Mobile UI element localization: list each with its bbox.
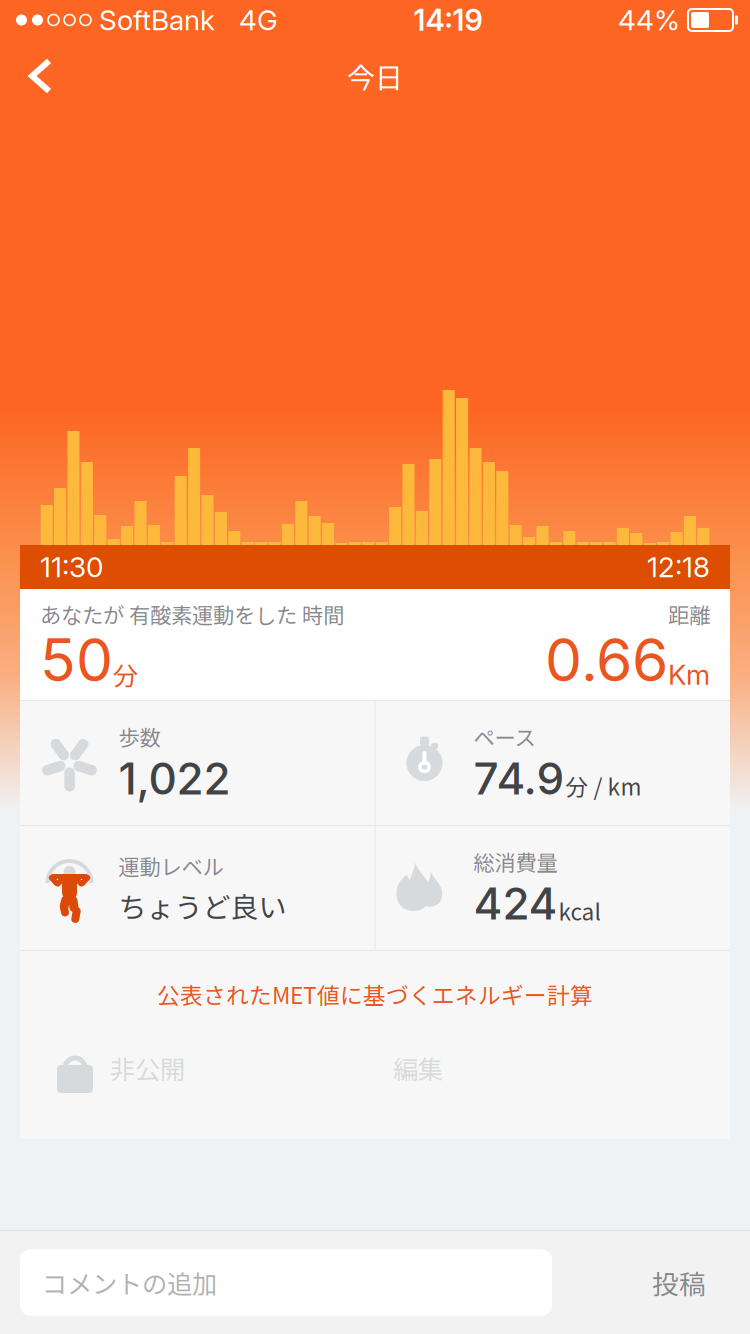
- staticText: SoftBank 4G: [91, 3, 278, 37]
- button[interactable]: Back: [0, 49, 53, 103]
- staticText: 12:18: [647, 550, 710, 584]
- staticText: 0.66: [545, 624, 668, 695]
- staticText: 公表されたMET値に基づくエネルギー計算: [157, 978, 593, 1010]
- staticText: kcal: [558, 894, 600, 927]
- staticText: 14:19: [413, 2, 482, 38]
- staticText: コメントの追加: [42, 1264, 217, 1301]
- staticText: 11:30: [40, 550, 103, 584]
- button[interactable]: 非公開: [20, 1037, 185, 1099]
- staticText: 74.9: [473, 752, 564, 805]
- staticText: 歩数: [118, 721, 160, 752]
- staticText: 424: [473, 877, 557, 930]
- staticText: 50: [40, 624, 113, 695]
- staticText: 1,022: [118, 752, 230, 805]
- button[interactable]: 編集: [358, 1037, 478, 1099]
- staticText: 非公開: [110, 1050, 185, 1086]
- staticText: ペース: [473, 721, 535, 752]
- button[interactable]: 公表されたMET値に基づくエネルギー計算: [20, 951, 730, 1037]
- staticText: ちょうど良い: [118, 885, 286, 926]
- staticText: Km: [668, 658, 710, 691]
- staticText: あなたが 有酸素運動をした 時間: [40, 599, 344, 629]
- staticText: 44%: [618, 3, 688, 37]
- staticText: 今日: [347, 56, 403, 96]
- staticText: 総消費量: [473, 846, 557, 877]
- button[interactable]: コメントの追加: [20, 1249, 552, 1315]
- staticText: 距離: [668, 599, 710, 629]
- staticText: 投稿: [652, 1263, 706, 1302]
- staticText: 分 / km: [565, 769, 641, 802]
- staticText: 分: [113, 656, 138, 692]
- button[interactable]: 投稿: [614, 1249, 744, 1315]
- staticText: 運動レベル: [118, 850, 223, 881]
- staticText: 編集: [393, 1050, 443, 1086]
